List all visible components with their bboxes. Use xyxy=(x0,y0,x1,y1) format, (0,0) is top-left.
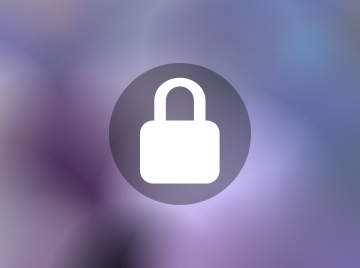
button[interactable]: Locked xyxy=(109,63,251,205)
